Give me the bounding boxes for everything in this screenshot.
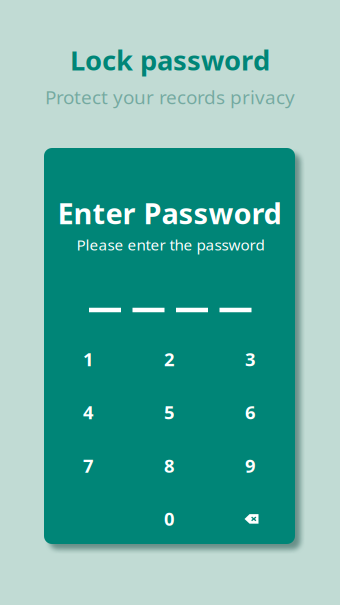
staticText: 1	[83, 346, 94, 372]
staticText: 5	[164, 399, 175, 425]
button[interactable]: 4	[48, 385, 129, 438]
staticText: Please enter the password	[76, 234, 264, 255]
button[interactable]: 6	[210, 385, 291, 438]
button[interactable]: 3	[210, 332, 291, 385]
staticText: Enter Password	[57, 193, 281, 233]
button[interactable]: 8	[129, 439, 210, 492]
staticText: 4	[83, 399, 94, 425]
button[interactable]: 7	[48, 439, 129, 492]
button[interactable]: Delete	[211, 493, 292, 546]
staticText: Lock password	[70, 41, 270, 79]
staticText: 8	[164, 453, 175, 478]
staticText: 0	[164, 506, 175, 531]
staticText: 6	[245, 399, 256, 425]
button[interactable]: 2	[129, 332, 210, 385]
button[interactable]: 0	[129, 492, 210, 545]
staticText: 7	[83, 453, 94, 478]
staticText: 9	[245, 453, 256, 478]
button[interactable]: 5	[129, 385, 210, 438]
staticText: 3	[245, 346, 256, 372]
staticText: 2	[164, 346, 175, 372]
button[interactable]: 9	[210, 439, 291, 492]
staticText: Protect your records privacy	[45, 84, 295, 110]
button[interactable]: 1	[48, 332, 129, 385]
